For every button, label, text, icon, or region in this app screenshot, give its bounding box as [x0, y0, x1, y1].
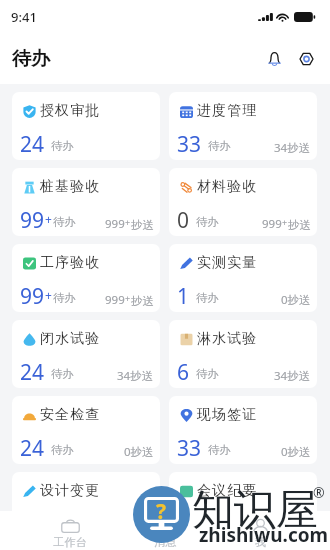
staticText: 999 [262, 216, 282, 232]
staticText: 待办 [196, 367, 219, 381]
staticText: 0抄送 [124, 444, 154, 460]
staticText: ? [156, 497, 167, 526]
staticText: + [282, 216, 288, 228]
staticText: 淋水试验 [197, 330, 258, 348]
staticText: + [125, 216, 131, 228]
staticText: 999 [105, 292, 125, 308]
staticText: 会议纪要 [197, 482, 258, 500]
staticText: 24 [20, 434, 45, 463]
staticText: 材料验收 [197, 178, 258, 196]
staticText: 99 [20, 206, 45, 235]
staticText: 99 [20, 282, 45, 311]
staticText: 待办 [53, 215, 76, 229]
button[interactable]: Settings [290, 43, 322, 75]
button[interactable]: 消息 [118, 513, 213, 549]
staticText: zhishiwu.com [199, 522, 329, 548]
button[interactable]: 进度管理 [169, 92, 317, 160]
staticText: 抄送 [131, 218, 154, 232]
button[interactable]: 闭水试验 [12, 320, 160, 388]
staticText: ® [313, 483, 325, 502]
staticText: 进度管理 [197, 102, 258, 120]
staticText: + [45, 287, 52, 303]
staticText: 0抄送 [281, 292, 311, 308]
staticText: 24 [20, 358, 45, 387]
staticText: 33 [177, 434, 202, 463]
staticText: 知识屋 [192, 484, 318, 537]
staticText: 待办 [196, 291, 219, 305]
button[interactable]: 安全检查 [12, 396, 160, 464]
staticText: 9:41 [11, 8, 37, 26]
staticText: 待办 [53, 291, 76, 305]
staticText: 34抄送 [274, 140, 311, 156]
button[interactable]: 材料验收 [169, 168, 317, 236]
staticText: 待办 [208, 139, 231, 153]
staticText: 待办 [51, 443, 74, 457]
staticText: 我 [255, 535, 267, 549]
staticText: 安全检查 [40, 406, 101, 424]
staticText: 工作台 [53, 535, 88, 549]
staticText: + [45, 211, 52, 227]
staticText: 待办 [51, 367, 74, 381]
button[interactable]: 工作台 [22, 513, 118, 549]
staticText: 闭水试验 [40, 330, 101, 348]
staticText: 待办 [12, 47, 50, 71]
staticText: 34抄送 [117, 368, 154, 384]
button[interactable]: Notifications [258, 43, 290, 75]
staticText: 33 [177, 130, 202, 159]
staticText: 抄送 [131, 294, 154, 308]
staticText: 抄送 [288, 218, 311, 232]
staticText: 现场签证 [197, 406, 258, 424]
staticText: 0抄送 [281, 444, 311, 460]
button[interactable]: 现场签证 [169, 396, 317, 464]
button[interactable]: 授权审批 [12, 92, 160, 160]
staticText: 待办 [196, 215, 219, 229]
staticText: 桩基验收 [40, 178, 101, 196]
staticText: 消息 [154, 535, 177, 549]
button[interactable]: 工序验收 [12, 244, 160, 312]
staticText: 6 [177, 358, 190, 387]
staticText: 24 [20, 130, 45, 159]
staticText: 待办 [208, 443, 231, 457]
staticText: 34抄送 [274, 368, 311, 384]
staticText: 实测实量 [197, 254, 258, 272]
button[interactable]: 桩基验收 [12, 168, 160, 236]
staticText: 999 [105, 216, 125, 232]
button[interactable]: 我 [213, 513, 308, 549]
staticText: 1 [177, 282, 190, 311]
staticText: 授权审批 [40, 102, 101, 120]
button[interactable]: 淋水试验 [169, 320, 317, 388]
staticText: 工序验收 [40, 254, 101, 272]
button[interactable]: 会议纪要 [169, 472, 317, 540]
button[interactable]: 实测实量 [169, 244, 317, 312]
staticText: + [125, 292, 131, 304]
staticText: 0 [177, 206, 190, 235]
staticText: 设计变更 [40, 482, 101, 500]
staticText: 待办 [51, 139, 74, 153]
button[interactable]: 设计变更 [12, 472, 160, 540]
